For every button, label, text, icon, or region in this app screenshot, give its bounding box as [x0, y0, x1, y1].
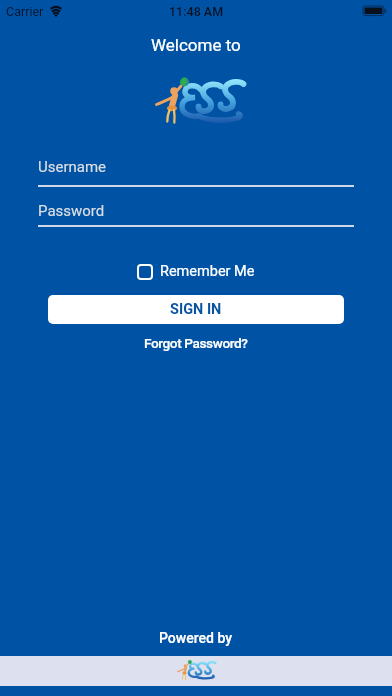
button[interactable]: Password	[38, 192, 354, 227]
button[interactable]: Remember Me	[137, 262, 255, 281]
staticText: Carrier	[6, 4, 44, 19]
staticText: Powered by	[159, 630, 233, 646]
staticText: SIGN IN	[170, 301, 222, 318]
staticText: Remember Me	[160, 263, 255, 280]
staticText: 11:48 AM	[169, 4, 224, 19]
button[interactable]: Username	[38, 152, 354, 187]
staticText: Welcome to	[151, 35, 241, 55]
button[interactable]: Forgot Password?	[144, 335, 248, 351]
staticText: Username	[38, 158, 107, 176]
staticText: Password	[38, 202, 105, 220]
button[interactable]: SIGN IN	[48, 295, 344, 324]
